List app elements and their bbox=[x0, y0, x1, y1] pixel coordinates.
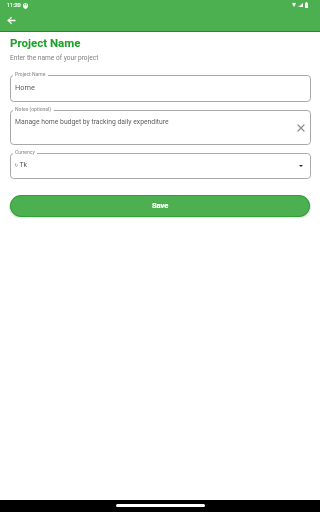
staticText: 11:20 bbox=[7, 2, 21, 8]
button[interactable]: Back bbox=[3, 12, 20, 29]
staticText: Project Name bbox=[15, 71, 46, 77]
button[interactable]: Save bbox=[10, 195, 310, 217]
staticText: Project Name bbox=[10, 36, 81, 49]
button[interactable]: Project Name bbox=[10, 75, 311, 102]
staticText: Enter the name of your project bbox=[10, 54, 99, 62]
staticText: Home bbox=[15, 83, 35, 92]
staticText: Notes (optional) bbox=[15, 106, 52, 112]
button[interactable]: Select currency bbox=[295, 160, 307, 172]
button[interactable]: Clear notes bbox=[294, 121, 308, 135]
staticText: Manage home budget by tracking daily exp… bbox=[15, 118, 169, 126]
button[interactable]: Notes (optional) bbox=[10, 110, 311, 145]
staticText: Currency bbox=[15, 149, 35, 155]
button[interactable]: Currency bbox=[10, 153, 311, 179]
staticText: ৳ Tk bbox=[15, 161, 28, 169]
staticText: Save bbox=[152, 201, 169, 210]
